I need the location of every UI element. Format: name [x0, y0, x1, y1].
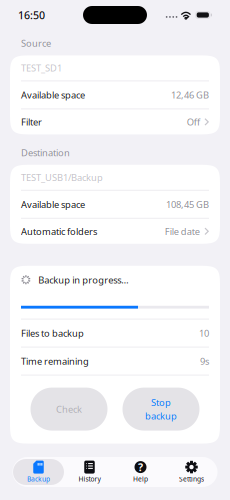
- button[interactable]: Stop: [122, 388, 199, 431]
- staticText: Backup in progress…: [38, 274, 128, 286]
- staticText: Help: [133, 475, 148, 483]
- staticText: Settings: [179, 475, 204, 483]
- staticText: Check: [56, 403, 82, 415]
- staticText: Available space: [21, 89, 85, 101]
- staticText: Destination: [21, 146, 70, 159]
- button[interactable]: Settings: [166, 459, 217, 485]
- staticText: 9s: [200, 355, 209, 367]
- staticText: backup: [145, 410, 177, 422]
- button[interactable]: Files to backup: [10, 320, 220, 347]
- button[interactable]: Available space: [10, 191, 220, 218]
- staticText: Source: [21, 37, 51, 49]
- staticText: Files to backup: [21, 327, 84, 339]
- staticText: File date: [165, 225, 200, 237]
- staticText: Time remaining: [21, 355, 89, 367]
- staticText: History: [78, 475, 100, 483]
- button[interactable]: Filter: [10, 109, 220, 134]
- staticText: 16:50: [18, 8, 45, 22]
- button[interactable]: ?: [115, 459, 166, 485]
- button[interactable]: TEST_USB1/Backup: [10, 165, 220, 190]
- staticText: Backup: [27, 475, 50, 483]
- staticText: 108,45 GB: [166, 198, 209, 210]
- button[interactable]: Available space: [10, 81, 220, 108]
- staticText: Filter: [21, 116, 42, 128]
- button[interactable]: Automatic folders: [10, 219, 220, 244]
- staticText: 12,46 GB: [171, 89, 209, 101]
- button[interactable]: History: [64, 459, 115, 485]
- staticText: TEST_USB1/Backup: [21, 171, 103, 183]
- staticText: Available space: [21, 198, 85, 210]
- button[interactable]: Backup: [13, 459, 64, 485]
- staticText: Automatic folders: [21, 225, 97, 237]
- staticText: TEST_SD1: [21, 62, 62, 74]
- button[interactable]: Check: [30, 388, 107, 431]
- staticText: 10: [199, 327, 209, 339]
- button[interactable]: TEST_SD1: [10, 55, 220, 80]
- button[interactable]: Time remaining: [10, 348, 220, 375]
- staticText: Stop: [151, 396, 171, 409]
- staticText: Off: [187, 116, 200, 128]
- staticText: ?: [138, 460, 143, 474]
